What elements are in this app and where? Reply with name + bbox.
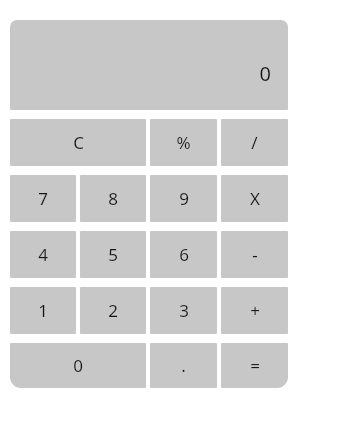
staticText: + [250,299,260,322]
button[interactable]: 4 [10,231,76,278]
staticText: X [250,187,260,210]
staticText: 6 [179,243,189,266]
button[interactable]: % [150,119,217,166]
button[interactable]: . [150,343,217,388]
button[interactable]: 5 [80,231,146,278]
staticText: % [176,131,191,154]
button[interactable]: X [221,175,288,222]
staticText: 1 [38,299,48,322]
button[interactable]: Calculator display [10,20,288,110]
staticText: - [252,243,258,266]
button[interactable]: 0 [10,343,146,388]
button[interactable]: C [10,119,146,166]
staticText: 4 [38,243,48,266]
staticText: 2 [108,299,118,322]
button[interactable]: 2 [80,287,146,334]
staticText: C [73,131,84,154]
staticText: 8 [108,187,118,210]
staticText: = [250,354,260,377]
staticText: . [181,354,186,377]
button[interactable]: 9 [150,175,217,222]
staticText: 5 [108,243,118,266]
staticText: 0 [73,354,83,377]
button[interactable]: 8 [80,175,146,222]
staticText: 9 [179,187,189,210]
staticText: 0 [259,60,271,87]
button[interactable]: / [221,119,288,166]
button[interactable]: 6 [150,231,217,278]
button[interactable]: 1 [10,287,76,334]
button[interactable]: + [221,287,288,334]
button[interactable]: = [221,343,288,388]
staticText: / [251,131,258,154]
staticText: 7 [38,187,48,210]
button[interactable]: 7 [10,175,76,222]
button[interactable]: - [221,231,288,278]
button[interactable]: 3 [150,287,217,334]
staticText: 3 [179,299,189,322]
